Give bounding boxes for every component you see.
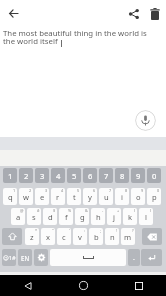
staticText: 7 bbox=[109, 188, 112, 193]
button[interactable]: Backspace bbox=[142, 228, 162, 245]
staticText: 8 bbox=[125, 188, 128, 193]
staticText: t bbox=[73, 192, 76, 202]
button[interactable]: u bbox=[99, 188, 113, 205]
button[interactable]: j bbox=[107, 208, 121, 225]
button[interactable]: 1 bbox=[3, 168, 17, 183]
staticText: p bbox=[152, 192, 157, 202]
button[interactable]: n bbox=[105, 228, 119, 245]
button[interactable]: Recents bbox=[111, 275, 166, 296]
staticText: y bbox=[88, 192, 92, 202]
staticText: 5 bbox=[77, 188, 80, 193]
staticText: 3 bbox=[40, 171, 45, 181]
staticText: 1 bbox=[13, 188, 16, 193]
button[interactable]: Settings bbox=[34, 249, 48, 266]
staticText: 5 bbox=[72, 171, 77, 181]
button[interactable]: g bbox=[75, 208, 89, 225]
staticText: 1 bbox=[8, 171, 13, 181]
button[interactable]: c bbox=[57, 228, 71, 245]
staticText: 0 bbox=[157, 188, 160, 193]
button[interactable]: Back bbox=[2, 2, 25, 25]
button[interactable]: Symbols bbox=[2, 249, 16, 266]
button[interactable]: w bbox=[19, 188, 33, 205]
staticText: v bbox=[78, 232, 82, 242]
button[interactable]: 8 bbox=[115, 168, 129, 183]
button[interactable]: m bbox=[121, 228, 135, 245]
button[interactable]: i bbox=[115, 188, 129, 205]
button[interactable]: 6 bbox=[83, 168, 97, 183]
staticText: " bbox=[52, 228, 54, 233]
staticText: 9 bbox=[136, 171, 141, 181]
button[interactable]: 9 bbox=[131, 168, 145, 183]
button[interactable]: 2 bbox=[19, 168, 33, 183]
staticText: h bbox=[96, 212, 101, 222]
button[interactable]: Voice input bbox=[135, 110, 156, 131]
staticText: 3 bbox=[45, 188, 48, 193]
staticText: ; bbox=[100, 228, 102, 233]
button[interactable]: Home bbox=[56, 275, 111, 296]
staticText: m bbox=[124, 232, 132, 242]
staticText: - bbox=[102, 208, 104, 213]
button[interactable]: Enter bbox=[141, 249, 162, 266]
button[interactable]: p bbox=[147, 188, 161, 205]
button[interactable]: y bbox=[83, 188, 97, 205]
button[interactable]: x bbox=[41, 228, 55, 245]
staticText: + bbox=[117, 208, 120, 213]
staticText: 0 bbox=[152, 171, 157, 181]
staticText: ' bbox=[69, 228, 70, 233]
button[interactable]: d bbox=[43, 208, 57, 225]
staticText: b bbox=[94, 232, 99, 242]
staticText: d bbox=[48, 212, 53, 222]
staticText: u bbox=[104, 192, 109, 202]
button[interactable]: Share bbox=[122, 2, 145, 25]
button[interactable]: z bbox=[25, 228, 39, 245]
button[interactable]: Language bbox=[18, 249, 32, 266]
button[interactable]: 3 bbox=[35, 168, 49, 183]
staticText: r bbox=[56, 192, 60, 202]
button[interactable]: t bbox=[67, 188, 81, 205]
staticText: @ bbox=[20, 208, 24, 213]
staticText: w bbox=[23, 192, 29, 202]
button[interactable]: 4 bbox=[51, 168, 65, 183]
staticText: $ bbox=[53, 208, 56, 213]
staticText: e bbox=[40, 192, 45, 202]
button[interactable]: 0 bbox=[147, 168, 161, 183]
button[interactable]: e bbox=[35, 188, 49, 205]
button[interactable]: 7 bbox=[99, 168, 113, 183]
staticText: ☺1# bbox=[3, 254, 16, 262]
staticText: The most beautiful thing in the world is… bbox=[3, 28, 147, 46]
button[interactable]: h bbox=[91, 208, 105, 225]
button[interactable]: Period bbox=[128, 249, 140, 266]
button[interactable]: Back bbox=[0, 275, 56, 296]
staticText: q bbox=[8, 192, 13, 202]
staticText: k bbox=[128, 212, 133, 222]
staticText: 4 bbox=[56, 171, 61, 181]
staticText: ! bbox=[116, 228, 118, 233]
button[interactable]: l bbox=[139, 208, 153, 225]
button[interactable]: o bbox=[131, 188, 145, 205]
button[interactable]: s bbox=[27, 208, 41, 225]
staticText: . bbox=[133, 253, 135, 263]
staticText: 2 bbox=[24, 171, 29, 181]
staticText: o bbox=[136, 192, 141, 202]
staticText: s bbox=[32, 212, 36, 222]
button[interactable]: r bbox=[51, 188, 65, 205]
button[interactable]: v bbox=[73, 228, 87, 245]
staticText: ) bbox=[150, 208, 152, 213]
button[interactable]: Space bbox=[50, 249, 126, 266]
button[interactable]: 5 bbox=[67, 168, 81, 183]
staticText: EN bbox=[21, 254, 30, 262]
button[interactable]: f bbox=[59, 208, 73, 225]
button[interactable]: a bbox=[11, 208, 25, 225]
button[interactable]: Delete bbox=[143, 2, 166, 25]
staticText: g bbox=[80, 212, 85, 222]
button[interactable]: Shift bbox=[2, 228, 22, 245]
staticText: ? bbox=[132, 228, 134, 233]
button[interactable]: k bbox=[123, 208, 137, 225]
staticText: 2 bbox=[29, 188, 32, 193]
button[interactable]: b bbox=[89, 228, 103, 245]
staticText: # bbox=[37, 208, 40, 213]
staticText: j bbox=[113, 212, 115, 222]
staticText: 9 bbox=[141, 188, 144, 193]
staticText: 7 bbox=[104, 171, 109, 181]
button[interactable]: q bbox=[3, 188, 17, 205]
